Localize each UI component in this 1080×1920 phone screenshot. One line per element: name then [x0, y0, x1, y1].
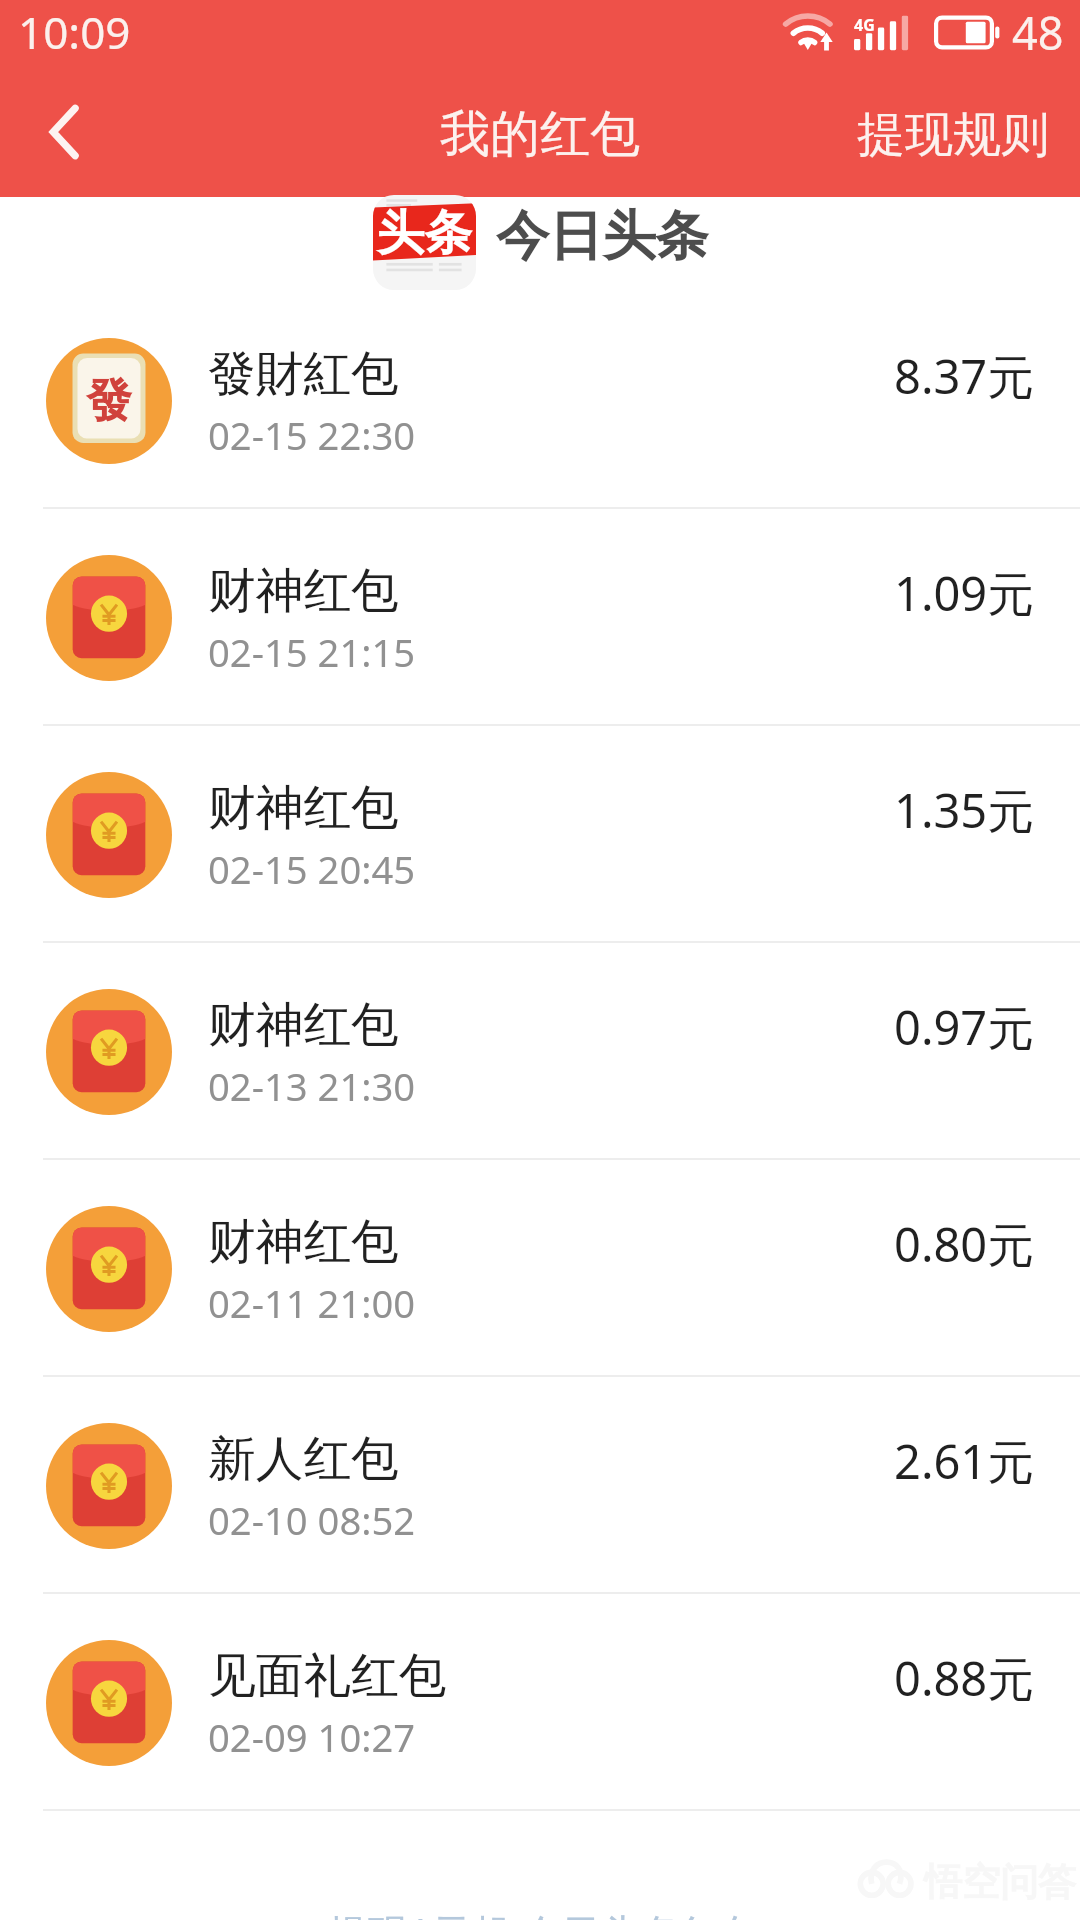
button[interactable]: Back — [0, 72, 130, 197]
staticText: 财神红包 — [208, 1212, 399, 1272]
button[interactable]: 见面礼红包 — [0, 1594, 1080, 1811]
button[interactable]: 财神红包 — [0, 1160, 1080, 1377]
staticText: 02-13 21:30 — [208, 1060, 416, 1112]
staticText: 10:09 — [18, 2, 131, 62]
button[interactable]: 新人红包 — [0, 1377, 1080, 1594]
staticText: 财神红包 — [208, 778, 399, 838]
staticText: 48 — [1012, 2, 1064, 63]
button[interactable]: 财神红包 — [0, 943, 1080, 1160]
staticText: 我的红包 — [440, 103, 640, 166]
staticText: 提现规则 — [857, 105, 1049, 165]
staticText: 头条 — [377, 203, 472, 263]
staticText: 今日头条 — [496, 203, 709, 270]
staticText: 提现1元起 今日头条红包 — [328, 1905, 762, 1920]
staticText: 1.35元 — [894, 778, 1035, 842]
staticText: 02-15 20:45 — [208, 843, 416, 895]
button[interactable]: 提现规则 — [826, 79, 1080, 191]
staticText: 8.37元 — [894, 344, 1035, 408]
staticText: 4G — [854, 14, 875, 36]
staticText: 财神红包 — [208, 561, 399, 621]
staticText: 02-09 10:27 — [208, 1711, 416, 1763]
staticText: 發 — [86, 372, 132, 430]
staticText: 新人红包 — [208, 1429, 399, 1489]
staticText: 0.88元 — [894, 1646, 1035, 1710]
staticText: 1.09元 — [894, 561, 1035, 625]
staticText: 發財紅包 — [208, 344, 399, 404]
button[interactable]: 财神红包 — [0, 726, 1080, 943]
staticText: 2.61元 — [894, 1429, 1035, 1493]
staticText: 02-10 08:52 — [208, 1494, 416, 1546]
staticText: 02-11 21:00 — [208, 1277, 416, 1329]
staticText: 0.80元 — [894, 1212, 1035, 1276]
staticText: 财神红包 — [208, 995, 399, 1055]
staticText: 0.97元 — [894, 995, 1035, 1059]
staticText: 悟空问答 — [924, 1858, 1076, 1906]
button[interactable]: 财神红包 — [0, 509, 1080, 726]
staticText: 见面礼红包 — [208, 1646, 447, 1706]
button[interactable]: 發 — [0, 292, 1080, 509]
staticText: 02-15 21:15 — [208, 626, 416, 678]
staticText: 02-15 22:30 — [208, 409, 416, 461]
